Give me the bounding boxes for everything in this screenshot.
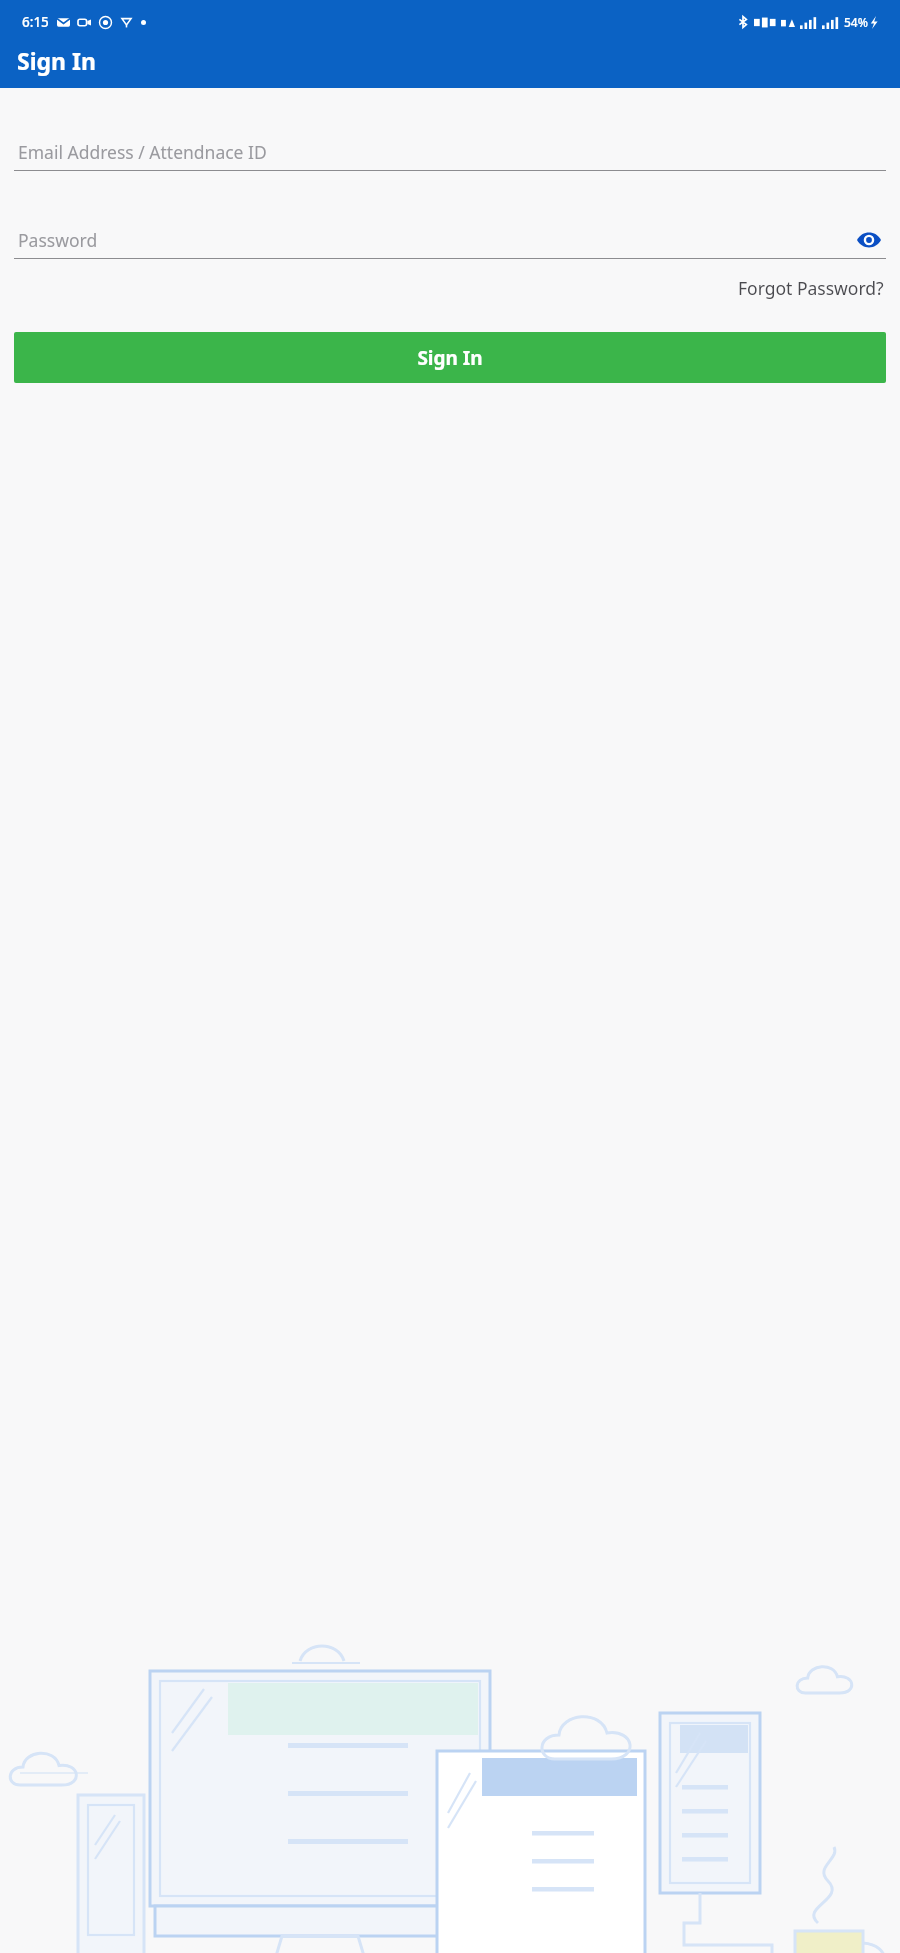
staticText: Password	[18, 228, 98, 252]
staticText: Email Address / Attendnace ID	[18, 140, 267, 164]
button[interactable]: Forgot Password?	[736, 272, 886, 304]
staticText: 6:15	[22, 13, 49, 31]
staticText: 54%	[844, 14, 868, 30]
staticText: Sign In	[417, 345, 483, 371]
staticText: Sign In	[17, 45, 96, 76]
button[interactable]: Password	[14, 222, 886, 258]
button[interactable]: Show password	[852, 223, 886, 257]
button[interactable]: Email Address / Attendnace ID	[14, 134, 886, 170]
button[interactable]: Sign In	[14, 332, 886, 383]
staticText: Forgot Password?	[738, 276, 884, 300]
